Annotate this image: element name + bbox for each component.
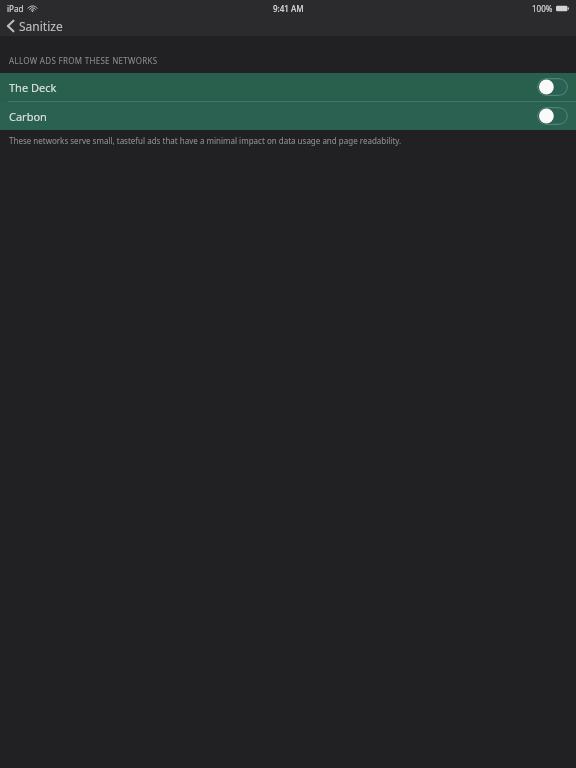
button[interactable]: The Deck — [0, 73, 576, 101]
staticText: ALLOW ADS FROM THESE NETWORKS — [9, 55, 158, 66]
staticText: The Deck — [9, 80, 57, 95]
button[interactable]: Carbon — [0, 102, 576, 130]
other: Back — [7, 20, 14, 32]
staticText: 100% — [532, 3, 553, 14]
staticText: Carbon — [9, 109, 47, 124]
staticText: Sanitize — [19, 18, 63, 34]
staticText: iPad — [7, 3, 24, 14]
staticText: 9:41 AM — [273, 3, 304, 14]
button[interactable]: Toggle network — [537, 107, 568, 125]
button[interactable]: Back — [0, 16, 73, 36]
staticText: These networks serve small, tasteful ads… — [9, 135, 402, 146]
button[interactable]: Toggle network — [537, 78, 568, 96]
